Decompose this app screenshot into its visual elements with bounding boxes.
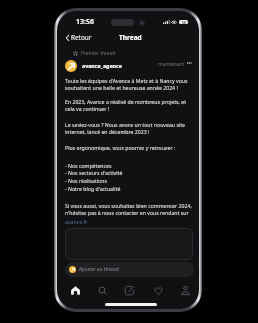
staticText: - Nos compétences - Nos secteurs d'activ… [65, 162, 194, 193]
staticText: avance_agence [82, 62, 122, 69]
button[interactable]: More options [183, 56, 196, 69]
button[interactable]: Ajouter au thread [65, 262, 194, 277]
staticText: Toute les équipes d'Avance à Metz et à N… [65, 77, 194, 92]
button[interactable]: Profile [175, 280, 195, 300]
staticText: Ajouter au thread [79, 266, 119, 273]
button[interactable]: Likes [148, 280, 168, 300]
staticText: En 2023, Avance a réalisé de nombreux pr… [65, 98, 194, 113]
staticText: Si vous aussi, vous souhaitez bien comme… [65, 202, 194, 217]
button[interactable]: Compose [119, 280, 139, 300]
staticText: Plus ergonomique, vous pourrez y retrouv… [65, 144, 194, 151]
staticText: Le saviez-vous ? Nous avons un tout nouv… [65, 121, 194, 136]
button[interactable]: Retour [64, 31, 94, 44]
staticText: 58 [182, 20, 186, 24]
button[interactable]: Search [92, 280, 112, 300]
staticText: maintenant [158, 61, 185, 68]
staticText: Retour [71, 33, 92, 42]
staticText: 13:56 [76, 17, 94, 27]
button[interactable]: Home [65, 280, 85, 300]
button[interactable]: avance.fr [65, 218, 88, 225]
staticText: Premier thread [81, 50, 116, 57]
staticText: Thread [119, 33, 142, 42]
